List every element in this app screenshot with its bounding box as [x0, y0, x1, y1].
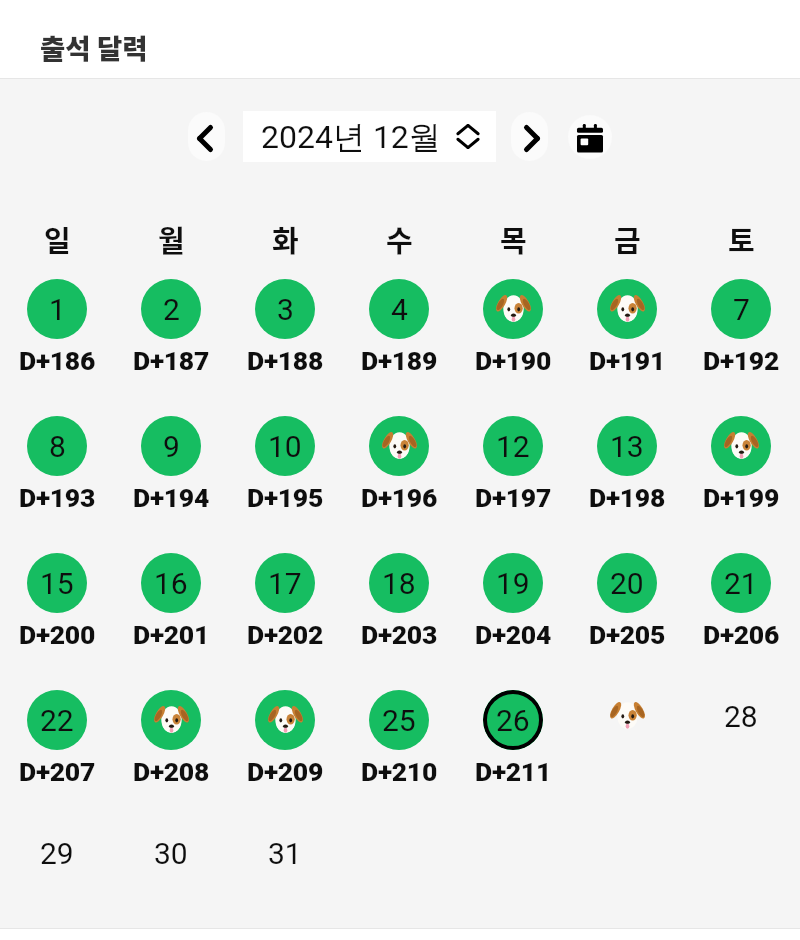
button[interactable]: Previous month	[188, 112, 225, 161]
staticText: 13	[610, 429, 644, 464]
button[interactable]	[570, 690, 684, 827]
staticText: 18	[382, 566, 416, 601]
staticText: D+192	[703, 345, 779, 376]
staticText: D+196	[361, 482, 437, 513]
button[interactable]: 26	[456, 690, 570, 827]
button[interactable]: 28	[684, 690, 798, 827]
button[interactable]: 16	[114, 553, 228, 690]
staticText: 28	[724, 699, 758, 734]
button[interactable]: 31	[228, 827, 342, 940]
staticText: 7	[733, 292, 750, 327]
staticText: D+191	[589, 345, 665, 376]
button[interactable]: 2	[114, 279, 228, 416]
button[interactable]: D+209	[228, 690, 342, 827]
button[interactable]: D+199	[684, 416, 798, 553]
staticText: 금	[614, 218, 641, 260]
button[interactable]: 21	[684, 553, 798, 690]
staticText: D+204	[475, 619, 551, 650]
staticText: 16	[154, 566, 188, 601]
staticText: 10	[268, 429, 302, 464]
button[interactable]: 29	[0, 827, 114, 940]
staticText: D+207	[19, 756, 95, 787]
staticText: 월	[158, 218, 185, 260]
staticText: D+200	[19, 619, 95, 650]
button[interactable]: 17	[228, 553, 342, 690]
button[interactable]: 4	[342, 279, 456, 416]
button[interactable]: 30	[114, 827, 228, 940]
staticText: D+195	[247, 482, 323, 513]
staticText: D+198	[589, 482, 665, 513]
staticText: 20	[610, 566, 644, 601]
staticText: D+201	[133, 619, 209, 650]
staticText: 15	[40, 566, 74, 601]
staticText: D+211	[475, 756, 551, 787]
staticText: D+197	[475, 482, 551, 513]
button[interactable]: D+208	[114, 690, 228, 827]
staticText: 31	[268, 836, 302, 871]
staticText: D+208	[133, 756, 209, 787]
button[interactable]: 8	[0, 416, 114, 553]
staticText: D+187	[133, 345, 209, 376]
staticText: 26	[496, 703, 530, 738]
staticText: 일	[44, 218, 71, 260]
button[interactable]: D+196	[342, 416, 456, 553]
staticText: D+193	[19, 482, 95, 513]
button[interactable]: 13	[570, 416, 684, 553]
staticText: D+188	[247, 345, 323, 376]
button[interactable]: 18	[342, 553, 456, 690]
staticText: 17	[268, 566, 302, 601]
staticText: D+194	[133, 482, 209, 513]
staticText: D+199	[703, 482, 779, 513]
button[interactable]: 15	[0, 553, 114, 690]
staticText: 목	[500, 218, 527, 260]
staticText: 22	[40, 703, 74, 738]
button[interactable]: 2024년 12월	[243, 111, 496, 162]
staticText: 8	[49, 429, 66, 464]
staticText: 출석 달력	[40, 27, 148, 67]
staticText: D+186	[19, 345, 95, 376]
staticText: 9	[163, 429, 180, 464]
button[interactable]: D+190	[456, 279, 570, 416]
button[interactable]: Next month	[511, 112, 548, 161]
button[interactable]: 12	[456, 416, 570, 553]
staticText: 25	[382, 703, 416, 738]
staticText: D+210	[361, 756, 437, 787]
staticText: D+202	[247, 619, 323, 650]
staticText: 화	[272, 218, 299, 260]
staticText: 4	[391, 292, 408, 327]
button[interactable]: 10	[228, 416, 342, 553]
button[interactable]: 20	[570, 553, 684, 690]
button[interactable]: 9	[114, 416, 228, 553]
button[interactable]: 3	[228, 279, 342, 416]
staticText: D+209	[247, 756, 323, 787]
button[interactable]: Pick date	[568, 115, 612, 159]
button[interactable]: D+191	[570, 279, 684, 416]
button[interactable]: 7	[684, 279, 798, 416]
staticText: 2	[163, 292, 180, 327]
staticText: 19	[496, 566, 530, 601]
staticText: 3	[277, 292, 294, 327]
staticText: D+190	[475, 345, 551, 376]
staticText: 29	[40, 836, 74, 871]
staticText: 토	[728, 218, 755, 260]
staticText: 21	[724, 566, 758, 601]
staticText: D+206	[703, 619, 779, 650]
staticText: D+203	[361, 619, 437, 650]
button[interactable]: 19	[456, 553, 570, 690]
staticText: 2024년 12월	[261, 117, 441, 157]
button[interactable]: 1	[0, 279, 114, 416]
staticText: D+189	[361, 345, 437, 376]
staticText: 1	[49, 292, 66, 327]
button[interactable]: 25	[342, 690, 456, 827]
staticText: 30	[154, 836, 188, 871]
staticText: 수	[386, 218, 413, 260]
button[interactable]: 22	[0, 690, 114, 827]
staticText: D+205	[589, 619, 665, 650]
staticText: 12	[496, 429, 530, 464]
